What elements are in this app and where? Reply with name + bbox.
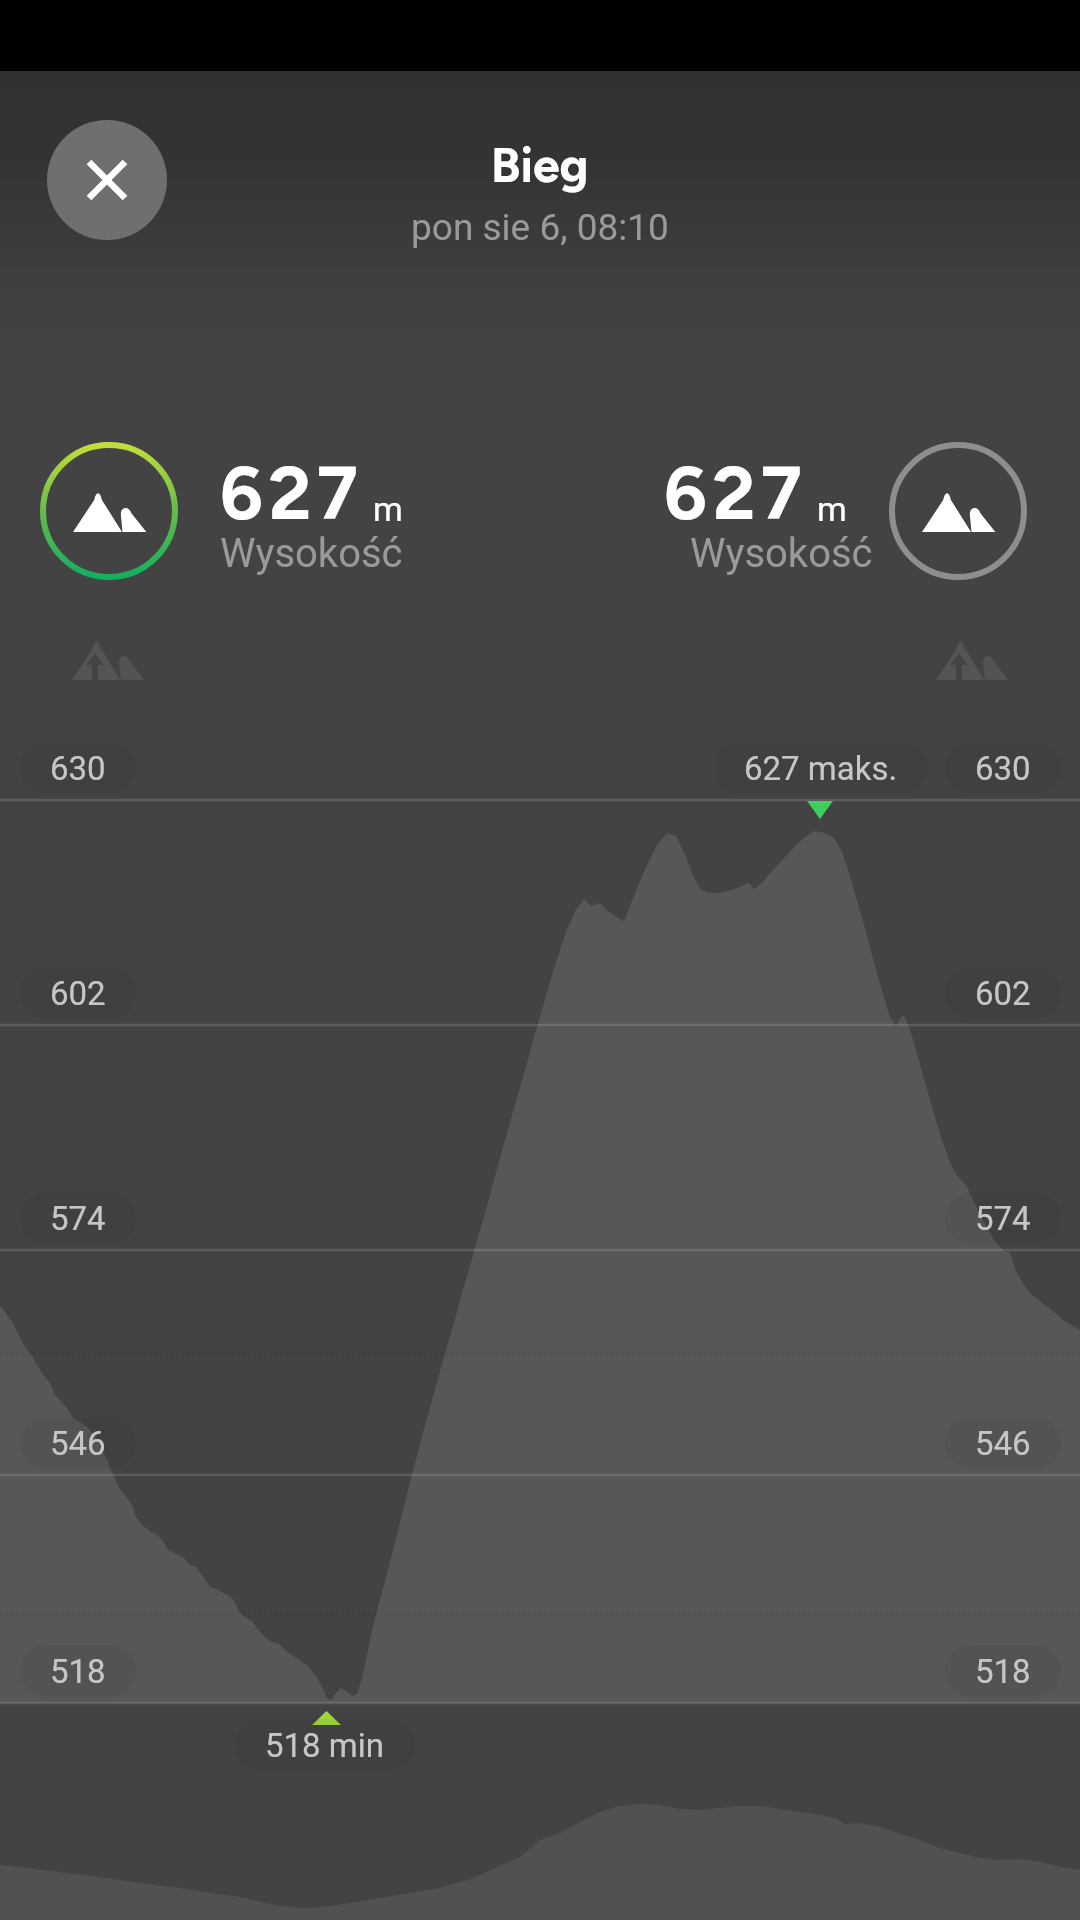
staticText: 627 <box>220 449 364 538</box>
staticText: 574 <box>975 1199 1031 1238</box>
staticText: m <box>373 489 403 529</box>
staticText: 630 <box>50 749 106 788</box>
staticText: Wysokość <box>690 530 873 577</box>
staticText: 630 <box>975 749 1031 788</box>
staticText: 574 <box>50 1199 106 1238</box>
staticText: m <box>817 489 847 529</box>
staticText: 627 maks. <box>744 749 898 788</box>
staticText: 518 <box>975 1652 1031 1691</box>
staticText: Bieg <box>491 136 589 194</box>
staticText: 546 <box>975 1424 1031 1463</box>
button[interactable]: Close <box>47 120 167 240</box>
staticText: 546 <box>50 1424 106 1463</box>
staticText: 602 <box>50 974 106 1013</box>
staticText: 518 min <box>265 1726 385 1765</box>
staticText: 602 <box>975 974 1031 1013</box>
staticText: Wysokość <box>220 530 403 577</box>
staticText: pon sie 6, 08:10 <box>411 206 669 249</box>
staticText: 518 <box>50 1652 106 1691</box>
staticText: 627 <box>664 449 808 538</box>
